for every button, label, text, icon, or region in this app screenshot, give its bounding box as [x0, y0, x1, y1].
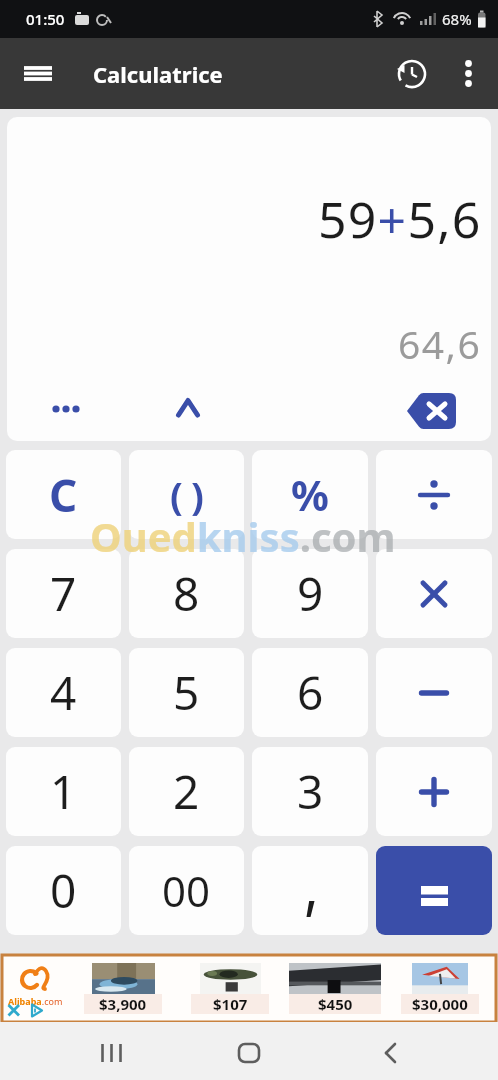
staticText: 4 — [50, 661, 77, 724]
button[interactable] — [391, 385, 471, 437]
staticText: ) — [191, 469, 204, 521]
button[interactable]: 00 — [129, 846, 244, 935]
button[interactable] — [365, 1032, 415, 1074]
staticText: $30,000 — [412, 994, 468, 1014]
staticText: 0 — [50, 859, 77, 922]
button[interactable]: 9 — [252, 549, 368, 638]
button[interactable]: $450 — [289, 963, 381, 1014]
button[interactable]: C — [6, 450, 121, 539]
button[interactable]: Alibaba.com — [6, 963, 66, 1015]
staticText: 64,6 — [398, 317, 482, 370]
staticText: $3,900 — [99, 994, 147, 1014]
staticText: 2 — [173, 760, 200, 823]
staticText: % — [291, 466, 329, 523]
staticText: Alibaba.com — [8, 995, 63, 1007]
button[interactable] — [252, 846, 368, 935]
button[interactable]: 8 — [129, 549, 244, 638]
staticText: 00 — [162, 862, 211, 919]
staticText: 3 — [297, 760, 324, 823]
button[interactable]: 4 — [6, 648, 121, 737]
staticText: ( — [170, 469, 183, 521]
button[interactable] — [376, 549, 492, 638]
staticText: 59+5,6 — [318, 185, 482, 253]
button[interactable]: 3 — [252, 747, 368, 836]
button[interactable] — [376, 450, 492, 539]
button[interactable] — [440, 38, 496, 109]
staticText: 01:50 — [26, 9, 65, 29]
button[interactable] — [86, 1032, 136, 1074]
button[interactable]: % — [252, 450, 368, 539]
staticText: Calculatrice — [93, 59, 223, 89]
staticText: 7 — [50, 562, 77, 625]
button[interactable] — [0, 38, 75, 109]
button[interactable]: 5 — [129, 648, 244, 737]
staticText: 9 — [297, 562, 324, 625]
staticText: 5 — [173, 661, 200, 724]
button[interactable]: 1 — [6, 747, 121, 836]
button[interactable] — [376, 747, 492, 836]
button[interactable]: $107 — [191, 963, 269, 1014]
staticText: Ouedkniss.com — [90, 509, 396, 563]
staticText: 1 — [50, 760, 77, 823]
staticText: 6 — [297, 661, 324, 724]
button[interactable] — [376, 846, 492, 935]
staticText: $450 — [318, 994, 353, 1014]
button[interactable]: 6 — [252, 648, 368, 737]
staticText: 8 — [173, 562, 200, 625]
staticText: 68% — [442, 9, 472, 29]
button[interactable]: 2 — [129, 747, 244, 836]
button[interactable] — [161, 387, 215, 427]
button[interactable]: $30,000 — [401, 963, 479, 1014]
button[interactable] — [384, 38, 440, 109]
staticText: $107 — [213, 994, 248, 1014]
button[interactable]: $3,900 — [84, 963, 162, 1014]
button[interactable] — [376, 648, 492, 737]
button[interactable]: 7 — [6, 549, 121, 638]
button[interactable] — [224, 1032, 274, 1074]
button[interactable] — [39, 389, 93, 429]
button[interactable]: ( — [129, 450, 244, 539]
staticText: C — [49, 465, 78, 525]
button[interactable]: 0 — [6, 846, 121, 935]
